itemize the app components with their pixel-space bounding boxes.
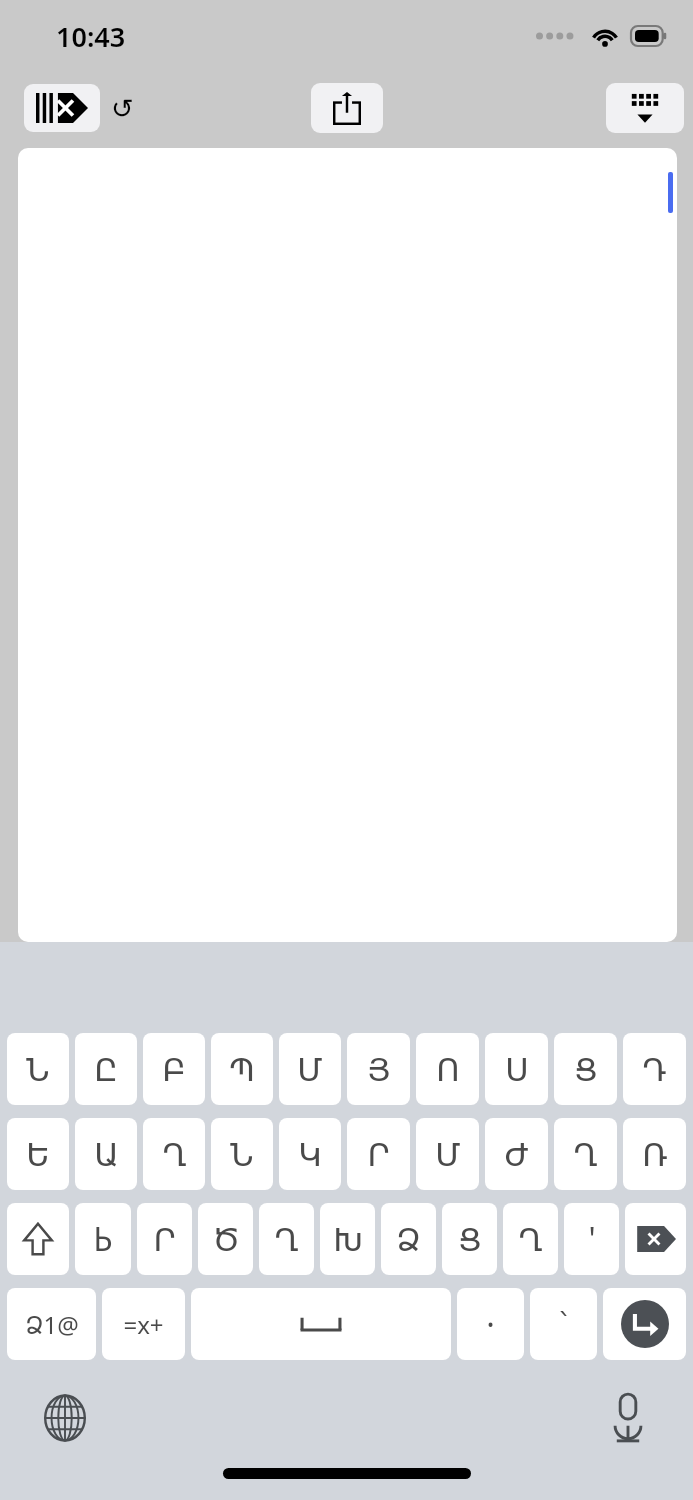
button[interactable]: Ձ xyxy=(381,1203,436,1275)
button[interactable]: Ն xyxy=(211,1118,273,1190)
button[interactable]: Hide keyboard xyxy=(606,83,684,133)
button[interactable]: ՝ xyxy=(530,1288,597,1360)
button[interactable]: Ց xyxy=(554,1033,617,1105)
staticText: Ս xyxy=(505,1051,529,1088)
staticText: Ժ xyxy=(504,1136,529,1173)
staticText: Ո xyxy=(436,1051,460,1088)
staticText: ' xyxy=(588,1217,596,1261)
staticText: ՝ xyxy=(560,1308,567,1341)
button[interactable]: Ս xyxy=(485,1033,548,1105)
button[interactable]: Ե xyxy=(7,1118,69,1190)
staticText: Մ xyxy=(435,1136,461,1173)
button[interactable]: Ր xyxy=(137,1203,192,1275)
button[interactable]: Ր xyxy=(347,1118,410,1190)
button[interactable]: Ա xyxy=(75,1118,137,1190)
staticText: Ե xyxy=(26,1136,50,1173)
staticText: Ն xyxy=(230,1136,254,1173)
button[interactable]: · xyxy=(457,1288,524,1360)
button[interactable]: =x+ xyxy=(102,1288,185,1360)
button[interactable]: Մ xyxy=(416,1118,479,1190)
button[interactable]: Բ xyxy=(143,1033,205,1105)
staticText: Դ xyxy=(642,1051,667,1088)
button[interactable]: Պ xyxy=(211,1033,273,1105)
button[interactable]: ' xyxy=(564,1203,619,1275)
button[interactable]: Ծ xyxy=(198,1203,253,1275)
button[interactable]: Ղ xyxy=(554,1118,617,1190)
staticText: Ը xyxy=(94,1051,118,1088)
staticText: Յ xyxy=(367,1051,391,1088)
button[interactable]: Խ xyxy=(320,1203,375,1275)
staticText: Ց xyxy=(458,1221,482,1258)
staticText: Ր xyxy=(153,1221,176,1258)
staticText: 10:43 xyxy=(56,18,126,55)
button[interactable] xyxy=(18,148,677,942)
staticText: Ղ xyxy=(518,1221,543,1258)
button[interactable]: Space xyxy=(191,1288,451,1360)
staticText: Կ xyxy=(298,1136,322,1173)
staticText: Ձ xyxy=(396,1221,421,1258)
staticText: · xyxy=(486,1302,495,1346)
staticText: Ь xyxy=(93,1217,113,1261)
button[interactable]: Դ xyxy=(623,1033,686,1105)
button[interactable]: Dictation xyxy=(597,1387,659,1449)
staticText: Մ xyxy=(297,1051,323,1088)
staticText: Ն xyxy=(26,1051,50,1088)
staticText: Ռ xyxy=(642,1136,668,1173)
staticText: Խ xyxy=(333,1221,363,1258)
button[interactable]: Ն xyxy=(7,1033,69,1105)
staticText: Ր xyxy=(367,1136,390,1173)
button[interactable]: Shift xyxy=(7,1203,69,1275)
staticText: Ղ xyxy=(573,1136,598,1173)
staticText: Ա xyxy=(94,1136,119,1173)
staticText: Ղ xyxy=(162,1136,187,1173)
button[interactable]: Ղ xyxy=(143,1118,205,1190)
button[interactable]: Ժ xyxy=(485,1118,548,1190)
button[interactable]: Մ xyxy=(279,1033,341,1105)
button[interactable]: Change language xyxy=(34,1387,96,1449)
button[interactable]: Backspace xyxy=(625,1203,686,1275)
button[interactable]: Ը xyxy=(75,1033,137,1105)
button[interactable]: Ց xyxy=(442,1203,497,1275)
button[interactable]: Ձ1@ xyxy=(7,1288,96,1360)
button[interactable]: Undo xyxy=(104,88,140,128)
staticText: Ձ1@ xyxy=(25,1308,79,1341)
button[interactable]: Ь xyxy=(75,1203,131,1275)
button[interactable]: Ղ xyxy=(259,1203,314,1275)
staticText: Ծ xyxy=(212,1221,240,1258)
button[interactable]: Share xyxy=(311,83,383,133)
staticText: Ց xyxy=(574,1051,598,1088)
staticText: Ղ xyxy=(274,1221,299,1258)
staticText: Պ xyxy=(229,1051,255,1088)
button[interactable]: Ռ xyxy=(623,1118,686,1190)
staticText: =x+ xyxy=(123,1308,164,1341)
button[interactable]: Յ xyxy=(347,1033,410,1105)
button[interactable]: Return xyxy=(603,1288,686,1360)
staticText: Բ xyxy=(162,1051,186,1088)
button[interactable]: Ո xyxy=(416,1033,479,1105)
button[interactable]: Clear text xyxy=(24,84,100,132)
button[interactable]: Ղ xyxy=(503,1203,558,1275)
staticText: ↺ xyxy=(111,93,134,124)
button[interactable]: Կ xyxy=(279,1118,341,1190)
